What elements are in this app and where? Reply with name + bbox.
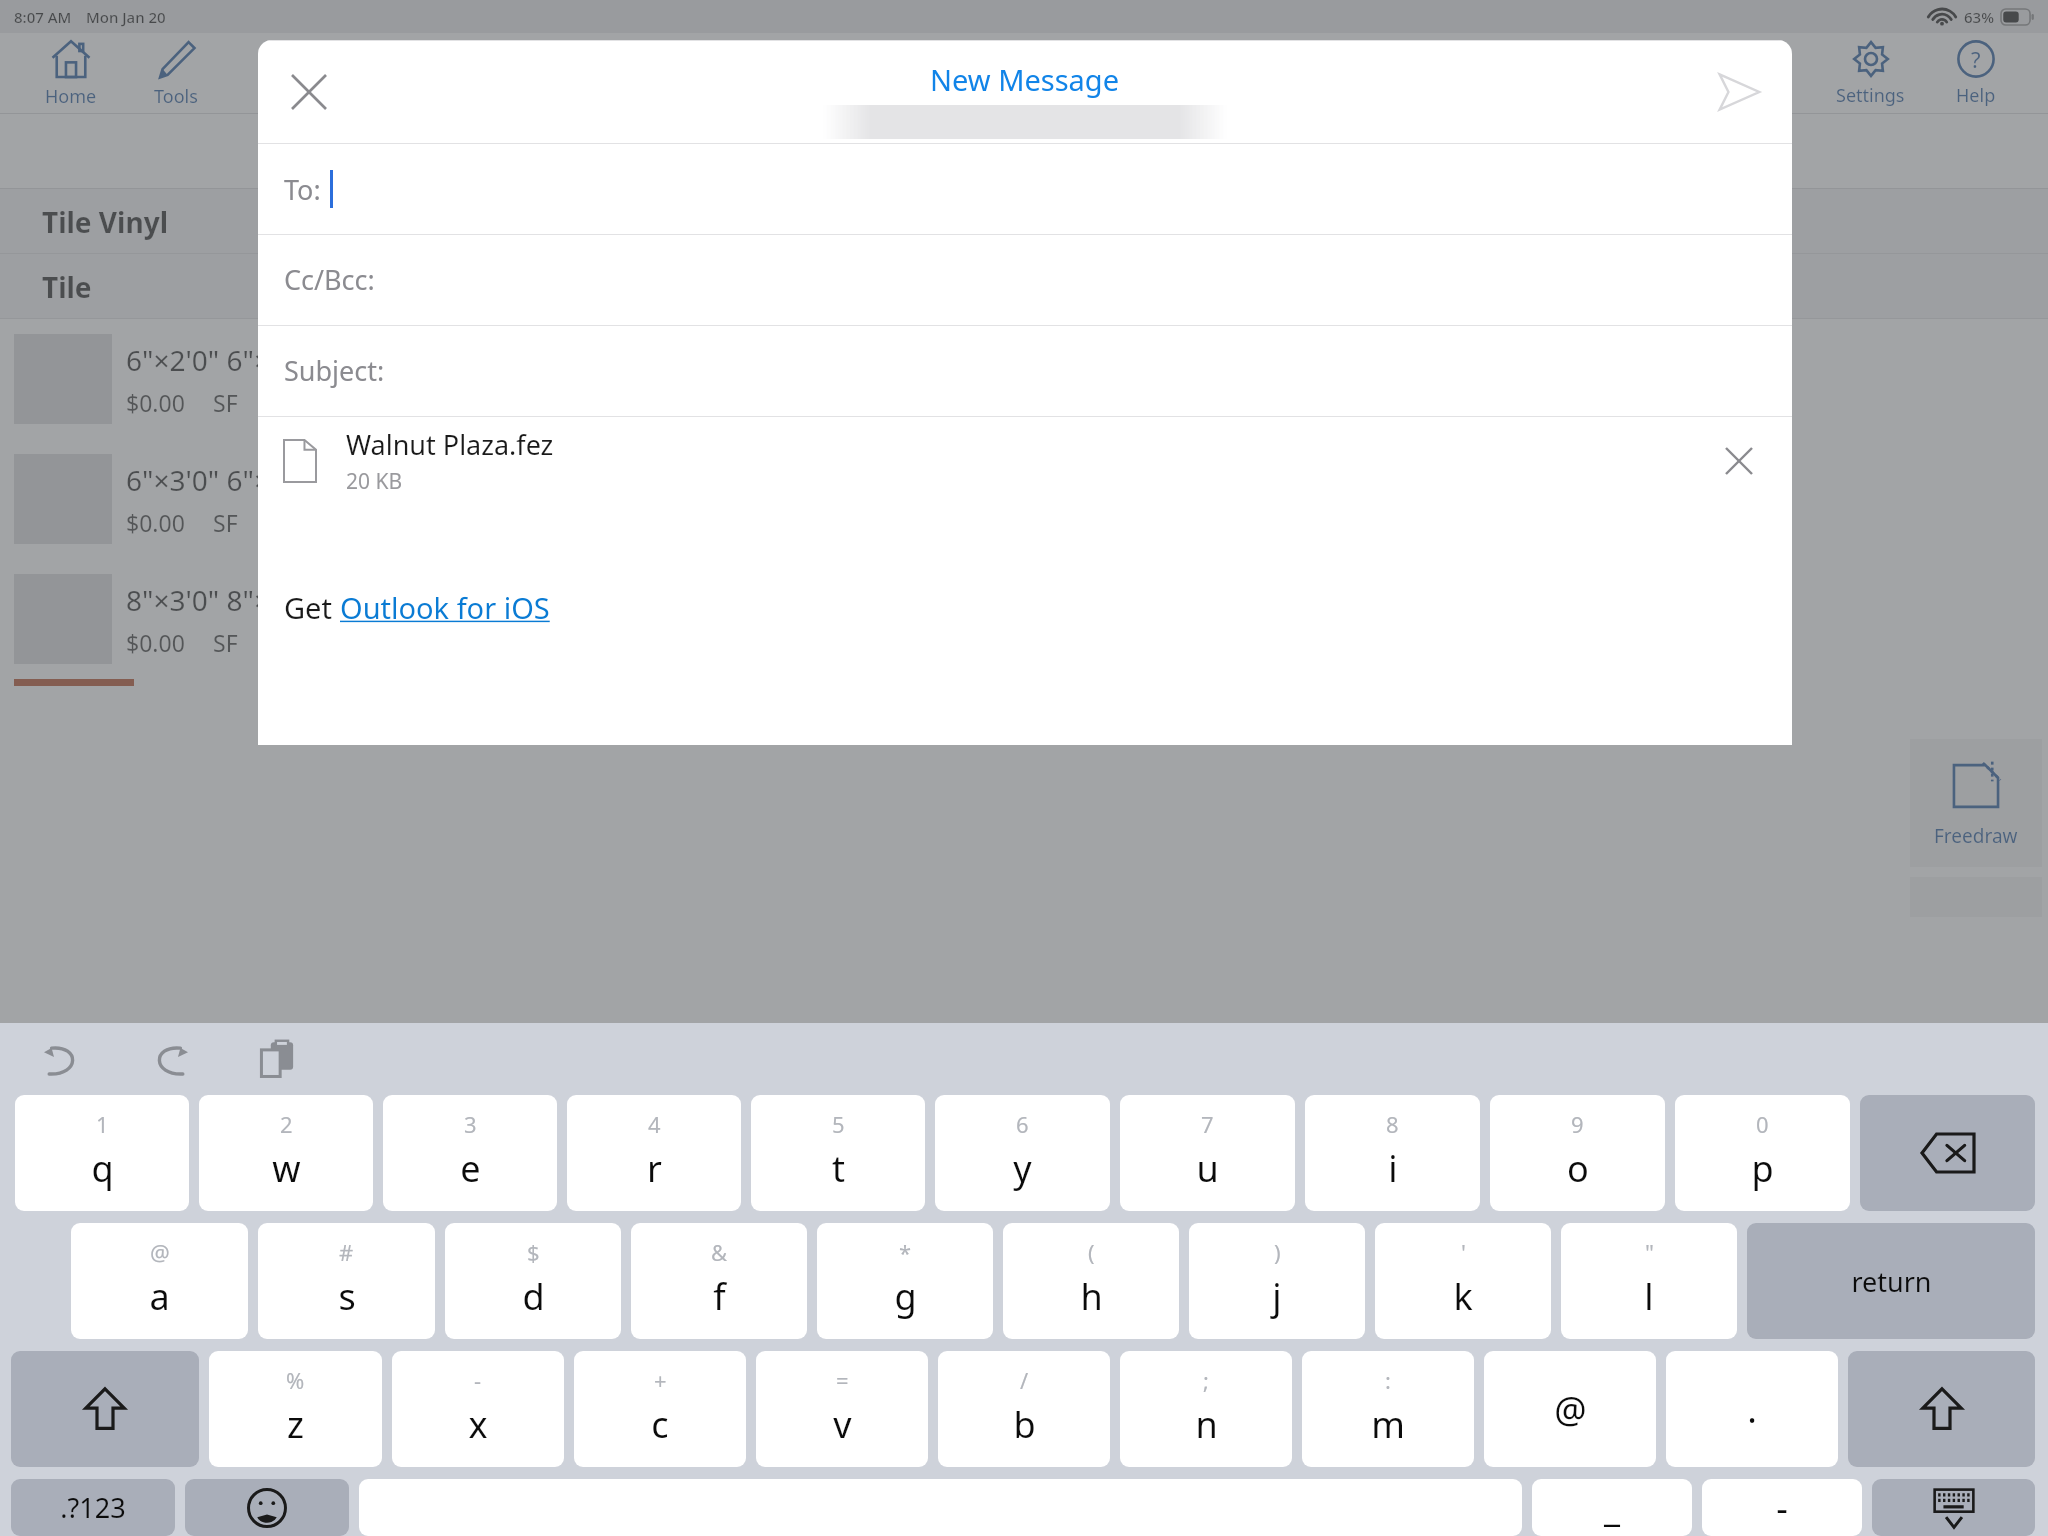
button[interactable]: ( [1003, 1223, 1179, 1339]
staticText: New Message [930, 60, 1120, 99]
staticText: Help [1956, 83, 1996, 108]
button[interactable]: @ [71, 1223, 248, 1339]
button[interactable]: 6"×3'0" 6"×3'0" [0, 439, 2048, 559]
button[interactable]: ; [1120, 1351, 1292, 1467]
staticText: SF [213, 507, 238, 538]
button[interactable]: Redo [142, 1031, 198, 1087]
button[interactable]: Emoji [185, 1479, 349, 1536]
button[interactable]: Send [1704, 57, 1774, 127]
button[interactable]: Walnut Plaza.fez [258, 416, 1792, 506]
staticText: Mon Jan 20 [86, 7, 166, 27]
staticText: e [460, 1144, 481, 1193]
staticText: SF [213, 627, 238, 658]
button[interactable]: Subject: [258, 325, 1792, 416]
staticText: 7 [1201, 1109, 1214, 1139]
staticText: 1 [96, 1109, 109, 1139]
staticText: y [1013, 1144, 1032, 1193]
staticText: / [1020, 1365, 1029, 1395]
button[interactable]: ) [1189, 1223, 1365, 1339]
button[interactable]: Backspace [1860, 1095, 2035, 1211]
staticText: $0.00 [126, 507, 185, 538]
button[interactable]: & [631, 1223, 807, 1339]
button[interactable]: + [574, 1351, 746, 1467]
button[interactable]: return [1747, 1223, 2035, 1339]
button[interactable]: 1 [15, 1095, 189, 1211]
button[interactable]: % [209, 1351, 382, 1467]
button[interactable]: 6 [935, 1095, 1110, 1211]
button[interactable]: Plan [228, 33, 333, 114]
button[interactable]: 3 [383, 1095, 557, 1211]
button[interactable]: @ [1484, 1351, 1656, 1467]
button[interactable]: 4 [567, 1095, 741, 1211]
staticText: t [832, 1144, 845, 1193]
staticText: # [339, 1237, 354, 1267]
button[interactable]: # [258, 1223, 435, 1339]
staticText: u [1196, 1144, 1219, 1193]
button[interactable]: Settings [1818, 33, 1923, 114]
staticText: 4 [648, 1109, 661, 1139]
staticText: % [286, 1365, 305, 1395]
button[interactable]: F [1029, 127, 1137, 177]
staticText: p [1751, 1144, 1774, 1193]
staticText: Plan [262, 84, 299, 109]
button[interactable]: Shift [1848, 1351, 2035, 1467]
staticText: ; [1203, 1365, 1209, 1395]
button[interactable]: 6"×2'0" 6"×2'0" [0, 319, 2048, 439]
staticText: g [894, 1272, 917, 1321]
button[interactable]: Undo [34, 1031, 90, 1087]
button[interactable]: - [1702, 1479, 1862, 1536]
button[interactable]: - [392, 1351, 564, 1467]
button[interactable]: 9 [1490, 1095, 1665, 1211]
button[interactable]: Freedraw [1910, 739, 2042, 867]
staticText: z [287, 1400, 304, 1449]
staticText: 5 [832, 1109, 845, 1139]
button[interactable]: " [1561, 1223, 1737, 1339]
staticText: d [522, 1272, 545, 1321]
staticText: SF [213, 387, 238, 418]
button[interactable]: $ [445, 1223, 621, 1339]
button[interactable]: Remove attachment [1712, 434, 1766, 488]
staticText: To: [284, 171, 321, 208]
button[interactable]: All [921, 127, 1029, 177]
staticText: . [1747, 1385, 1757, 1434]
staticText: w [272, 1144, 301, 1193]
button[interactable]: Paste [250, 1031, 306, 1087]
button[interactable]: Home [18, 33, 123, 114]
staticText: _ [1604, 1483, 1620, 1532]
button[interactable]: To: [258, 143, 1792, 234]
button[interactable]: Close [276, 59, 342, 125]
button[interactable]: Help [1923, 33, 2028, 114]
button[interactable]: Outlook for iOS [340, 588, 550, 627]
staticText: Cc/Bcc: [284, 261, 375, 298]
staticText: Settings [1836, 83, 1905, 108]
staticText: n [1195, 1400, 1218, 1449]
staticText: b [1013, 1400, 1036, 1449]
button[interactable]: 7 [1120, 1095, 1295, 1211]
button[interactable]: 5 [751, 1095, 925, 1211]
button[interactable]: Cc/Bcc: [258, 234, 1792, 325]
staticText: 6 [1016, 1109, 1029, 1139]
button[interactable]: 0 [1675, 1095, 1850, 1211]
button[interactable]: ' [1375, 1223, 1551, 1339]
button[interactable]: 2 [199, 1095, 373, 1211]
button[interactable]: = [756, 1351, 928, 1467]
staticText: Subject: [284, 352, 385, 389]
staticText: k [1453, 1272, 1473, 1321]
button[interactable]: .?123 [11, 1479, 175, 1536]
staticText: ' [1461, 1237, 1466, 1267]
button[interactable]: : [1302, 1351, 1474, 1467]
button[interactable]: / [938, 1351, 1110, 1467]
button[interactable]: 8"×3'0" 8"×3'0" [0, 559, 2048, 679]
staticText: " [1645, 1237, 1654, 1267]
button[interactable]: Hide keyboard [1872, 1479, 2035, 1536]
button[interactable]: * [817, 1223, 993, 1339]
button[interactable]: . [1666, 1351, 1838, 1467]
staticText: 3 [464, 1109, 477, 1139]
button[interactable]: Shift [11, 1351, 199, 1467]
staticText: Tile [42, 268, 92, 306]
button[interactable]: _ [1532, 1479, 1692, 1536]
button[interactable]: 8 [1305, 1095, 1480, 1211]
staticText: 8 [1386, 1109, 1399, 1139]
button[interactable]: Tools [123, 33, 228, 114]
